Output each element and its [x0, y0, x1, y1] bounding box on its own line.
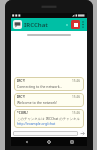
- staticText: このチャンネルは IRCChat のチャンネルです: [17, 116, 81, 121]
- button[interactable]: Back: [20, 137, 34, 146]
- button[interactable]: Message input: [13, 131, 78, 136]
- button[interactable]: Recent apps: [65, 137, 79, 146]
- button[interactable]: IRC?!: [14, 77, 84, 91]
- button[interactable]: http://example.org/chat: [17, 121, 56, 126]
- staticText: Connecting to the network...: [17, 84, 63, 89]
- button[interactable]: Chat: [13, 20, 22, 29]
- staticText: 15:26: [72, 79, 81, 83]
- button[interactable]: Send: [80, 131, 85, 136]
- staticText: IRC?!: [17, 95, 25, 99]
- staticText: http://example.org/chat: [17, 121, 56, 126]
- staticText: IRCChat: [24, 21, 48, 29]
- staticText: 15:26: [72, 111, 81, 115]
- staticText: IRC?!: [17, 79, 25, 83]
- button[interactable]: IRC?!: [14, 93, 84, 107]
- button[interactable]: Home: [42, 137, 56, 146]
- button[interactable]: More options: [81, 18, 85, 31]
- button[interactable]: Disconnect: [71, 20, 80, 29]
- staticText: Welcome to the network!: [17, 100, 57, 105]
- button[interactable]: Channel topic: [27, 34, 71, 36]
- button[interactable]: *CURL!: [14, 109, 84, 128]
- staticText: *CURL!: [17, 111, 28, 115]
- staticText: 15:26: [72, 95, 81, 99]
